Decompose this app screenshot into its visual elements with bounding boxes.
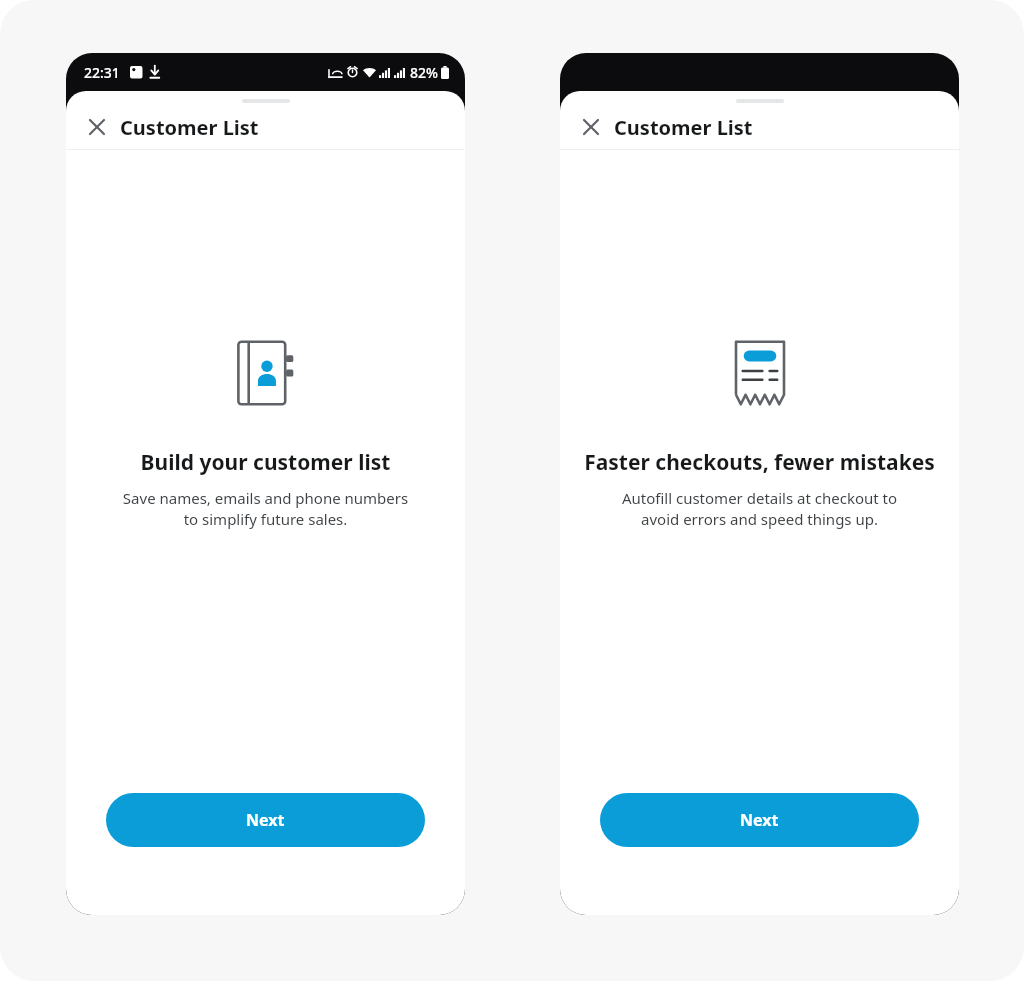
staticText: Customer List (614, 114, 753, 141)
staticText: Build your customer list (80, 448, 451, 477)
staticText: Next (246, 809, 285, 831)
button[interactable]: Close (578, 114, 604, 140)
button[interactable]: Next (106, 793, 425, 847)
staticText: 82% (410, 63, 438, 82)
staticText: 22:31 (84, 63, 120, 82)
staticText: Next (740, 809, 779, 831)
button[interactable]: Next (600, 793, 919, 847)
button[interactable]: Close (84, 114, 110, 140)
staticText: Autofill customer details at checkout to… (580, 488, 939, 530)
staticText: Customer List (120, 114, 259, 141)
staticText: Save names, emails and phone numbers to … (86, 488, 445, 530)
staticText: Faster checkouts, fewer mistakes (574, 448, 945, 477)
